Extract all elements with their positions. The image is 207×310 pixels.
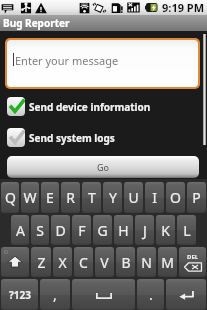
button[interactable]: .	[137, 279, 164, 310]
button[interactable]: Go	[7, 156, 199, 178]
button[interactable]: N	[137, 247, 156, 277]
button[interactable]: V	[95, 247, 114, 277]
button[interactable]: H	[114, 215, 133, 245]
button[interactable]: E	[41, 182, 59, 213]
staticText: G	[97, 221, 108, 240]
button[interactable]: T	[82, 182, 101, 213]
button[interactable]: O	[166, 182, 185, 213]
button[interactable]: Z	[31, 247, 51, 277]
staticText: S	[36, 221, 44, 240]
staticText: O	[170, 188, 181, 207]
button[interactable]: C	[74, 247, 93, 277]
button[interactable]: G	[93, 215, 112, 245]
staticText: Y	[109, 188, 117, 207]
staticText: I	[152, 188, 157, 207]
button[interactable]: Shift	[1, 247, 29, 277]
button[interactable]: M	[158, 247, 177, 277]
button[interactable]: Delete	[179, 247, 206, 277]
button[interactable]: Send device information	[7, 97, 151, 116]
button[interactable]: L	[177, 215, 196, 245]
button[interactable]: U	[124, 182, 143, 213]
staticText: ?123	[9, 288, 31, 302]
staticText: U	[128, 188, 139, 207]
staticText: T	[88, 188, 96, 207]
button[interactable]: ,	[40, 279, 70, 310]
staticText: Go	[97, 161, 109, 173]
button[interactable]: Send system logs	[7, 128, 115, 147]
button[interactable]: Space	[72, 279, 135, 310]
button[interactable]: F	[72, 215, 91, 245]
staticText: Send system logs	[29, 131, 115, 145]
staticText: Send device information	[29, 100, 151, 114]
staticText: B	[121, 253, 131, 272]
button[interactable]: Enter your message	[7, 40, 198, 87]
button[interactable]: K	[156, 215, 175, 245]
button[interactable]: B	[116, 247, 135, 277]
button[interactable]: ?123	[1, 279, 38, 310]
button[interactable]: A	[11, 215, 29, 245]
staticText: 9:19 PM	[162, 0, 205, 15]
staticText: Bug Reporter	[3, 16, 70, 30]
staticText: Z	[37, 253, 46, 272]
button[interactable]: S	[31, 215, 49, 245]
button[interactable]: D	[51, 215, 70, 245]
staticText: M	[161, 253, 174, 272]
staticText: K	[161, 221, 170, 240]
staticText: DEL	[187, 253, 199, 261]
staticText: F	[78, 221, 86, 240]
button[interactable]: W	[21, 182, 39, 213]
staticText: .	[149, 285, 153, 304]
staticText: J	[143, 221, 147, 240]
staticText: N	[141, 253, 152, 272]
staticText: W	[23, 188, 37, 207]
button[interactable]: Enter	[166, 279, 206, 310]
button[interactable]: X	[53, 247, 72, 277]
button[interactable]: P	[187, 182, 206, 213]
staticText: A	[16, 221, 25, 240]
button[interactable]: J	[135, 215, 154, 245]
staticText: C	[79, 253, 88, 272]
button[interactable]: I	[145, 182, 164, 213]
staticText: P	[192, 188, 201, 207]
button[interactable]: Q	[1, 182, 19, 213]
staticText: L	[183, 221, 191, 240]
staticText: E	[46, 188, 54, 207]
staticText: H	[118, 221, 129, 240]
staticText: V	[100, 253, 109, 272]
staticText: Q	[5, 188, 16, 207]
staticText: Enter your message	[15, 53, 119, 68]
staticText: ,	[53, 285, 57, 304]
staticText: X	[58, 253, 67, 272]
button[interactable]: Y	[103, 182, 122, 213]
staticText: R	[66, 188, 75, 207]
staticText: D	[55, 221, 66, 240]
button[interactable]: R	[61, 182, 80, 213]
